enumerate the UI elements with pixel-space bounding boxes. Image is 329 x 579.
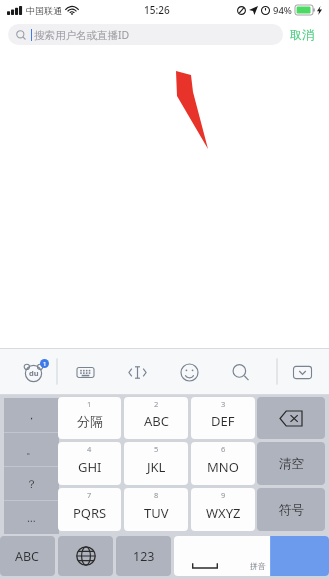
button[interactable]: 8: [124, 488, 188, 531]
staticText: 9: [221, 490, 226, 500]
button[interactable]: 搜索用户名或直播ID: [8, 24, 283, 45]
button[interactable]: Emoji: [178, 361, 200, 383]
button[interactable]: 清空: [257, 442, 325, 485]
button[interactable]: Keyboard: [74, 361, 96, 383]
button[interactable]: 7: [58, 488, 121, 531]
staticText: 7: [87, 490, 92, 500]
staticText: ABC: [15, 548, 40, 565]
staticText: DEF: [211, 412, 235, 430]
button[interactable]: 5: [124, 442, 188, 485]
staticText: MNO: [207, 458, 239, 476]
staticText: 1: [43, 360, 47, 368]
button[interactable]: 123: [116, 536, 171, 576]
staticText: 拼音: [250, 561, 266, 571]
staticText: 搜索用户名或直播ID: [34, 28, 130, 42]
staticText: ，: [26, 408, 37, 422]
button[interactable]: 符号: [257, 488, 325, 531]
button[interactable]: Space: [174, 536, 329, 576]
button[interactable]: 6: [191, 442, 255, 485]
button[interactable]: Baidu input method: [20, 357, 50, 387]
staticText: JKL: [147, 458, 166, 476]
staticText: du: [29, 368, 39, 378]
button[interactable]: 9: [191, 488, 255, 531]
staticText: 取消: [290, 27, 314, 42]
staticText: …: [27, 510, 36, 525]
button[interactable]: 4: [58, 442, 121, 485]
staticText: 符号: [279, 502, 304, 518]
staticText: 1: [87, 399, 92, 409]
staticText: ？: [26, 477, 37, 491]
button[interactable]: 1: [58, 397, 121, 439]
staticText: 6: [221, 444, 226, 454]
staticText: WXYZ: [206, 504, 241, 522]
staticText: 2: [154, 399, 159, 409]
button[interactable]: 3: [191, 397, 255, 439]
button[interactable]: Cursor: [126, 361, 148, 383]
staticText: 3: [221, 399, 226, 409]
button[interactable]: Delete: [257, 397, 325, 439]
button[interactable]: 取消: [283, 23, 321, 46]
staticText: 。: [26, 443, 37, 457]
staticText: TUV: [144, 504, 169, 522]
button[interactable]: 。: [4, 433, 59, 466]
button[interactable]: 2: [124, 397, 188, 439]
staticText: 4: [87, 444, 92, 454]
button[interactable]: ABC: [0, 536, 55, 576]
staticText: 15:26: [144, 3, 170, 17]
staticText: 123: [133, 548, 155, 565]
staticText: ABC: [144, 412, 169, 430]
button[interactable]: Search: [229, 361, 251, 383]
button[interactable]: ，: [4, 398, 59, 432]
button[interactable]: ？: [4, 467, 59, 500]
staticText: 清空: [279, 456, 304, 472]
button[interactable]: …: [4, 501, 59, 534]
staticText: 5: [154, 444, 159, 454]
button[interactable]: Collapse keyboard: [291, 361, 313, 383]
staticText: 94%: [273, 4, 292, 17]
staticText: 中国联通: [26, 5, 62, 16]
button[interactable]: Switch language: [58, 536, 113, 576]
staticText: PQRS: [73, 504, 107, 522]
staticText: 8: [154, 490, 159, 500]
staticText: GHI: [78, 458, 102, 476]
staticText: 分隔: [77, 413, 103, 429]
